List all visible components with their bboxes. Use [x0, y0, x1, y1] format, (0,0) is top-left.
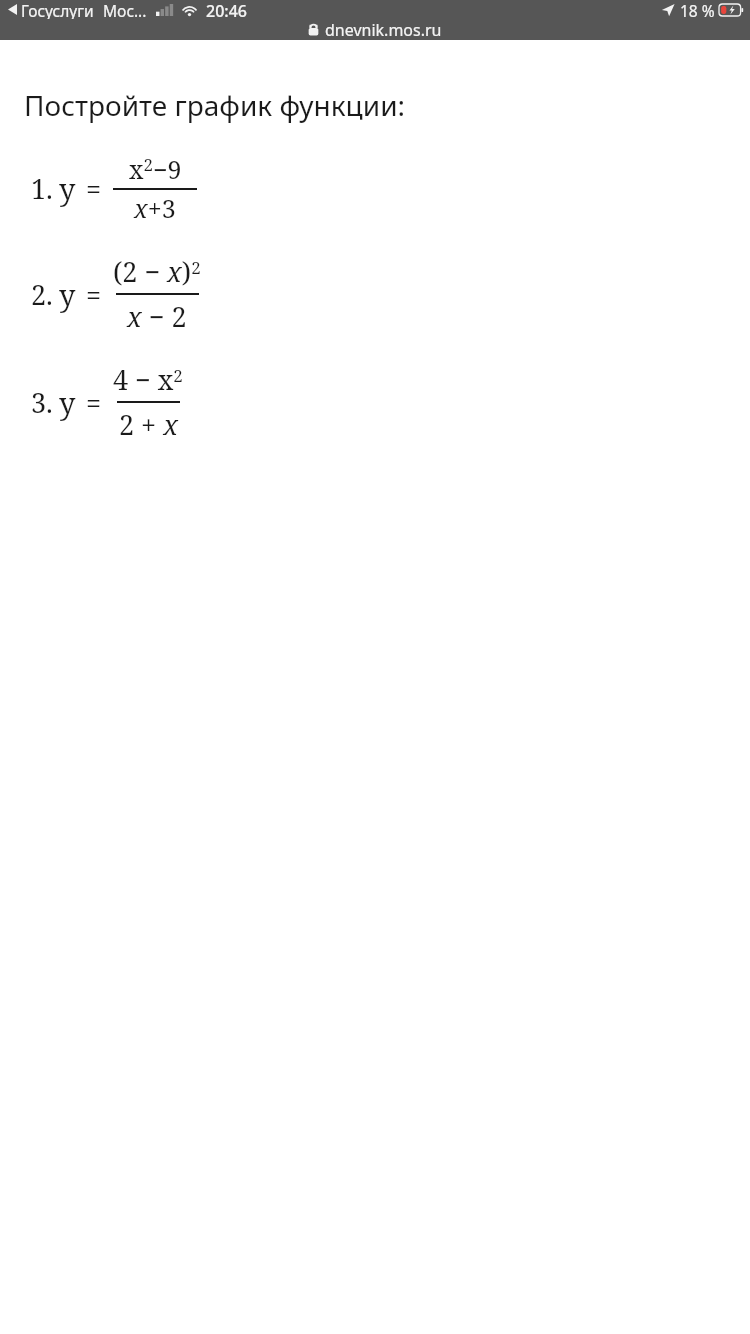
staticText: = [86, 276, 102, 313]
button[interactable]: Госуслуги [6, 0, 96, 19]
staticText: 2. [31, 276, 53, 313]
staticText: y [59, 383, 76, 422]
staticText: y [59, 169, 76, 208]
staticText: x2−9 [129, 152, 182, 186]
staticText: y [59, 275, 76, 314]
staticText: 20:46 [206, 0, 247, 19]
staticText: 3. [31, 384, 53, 421]
staticText: 1. [31, 170, 53, 207]
staticText: = [86, 170, 102, 207]
staticText: 2 + x [119, 406, 178, 443]
staticText: dnevnik.mos.ru [325, 19, 442, 39]
staticText: Постройте график функции: [24, 86, 406, 124]
staticText: (2 − x)2 [113, 253, 201, 290]
button[interactable]: dnevnik.mos.ru [308, 19, 442, 39]
staticText: Госуслуги [21, 0, 94, 19]
staticText: Moc... [103, 0, 147, 19]
staticText: 4 − x2 [113, 361, 183, 398]
staticText: = [86, 384, 102, 421]
staticText: x − 2 [127, 298, 187, 335]
staticText: 18 % [680, 0, 715, 19]
staticText: x+3 [134, 191, 176, 225]
